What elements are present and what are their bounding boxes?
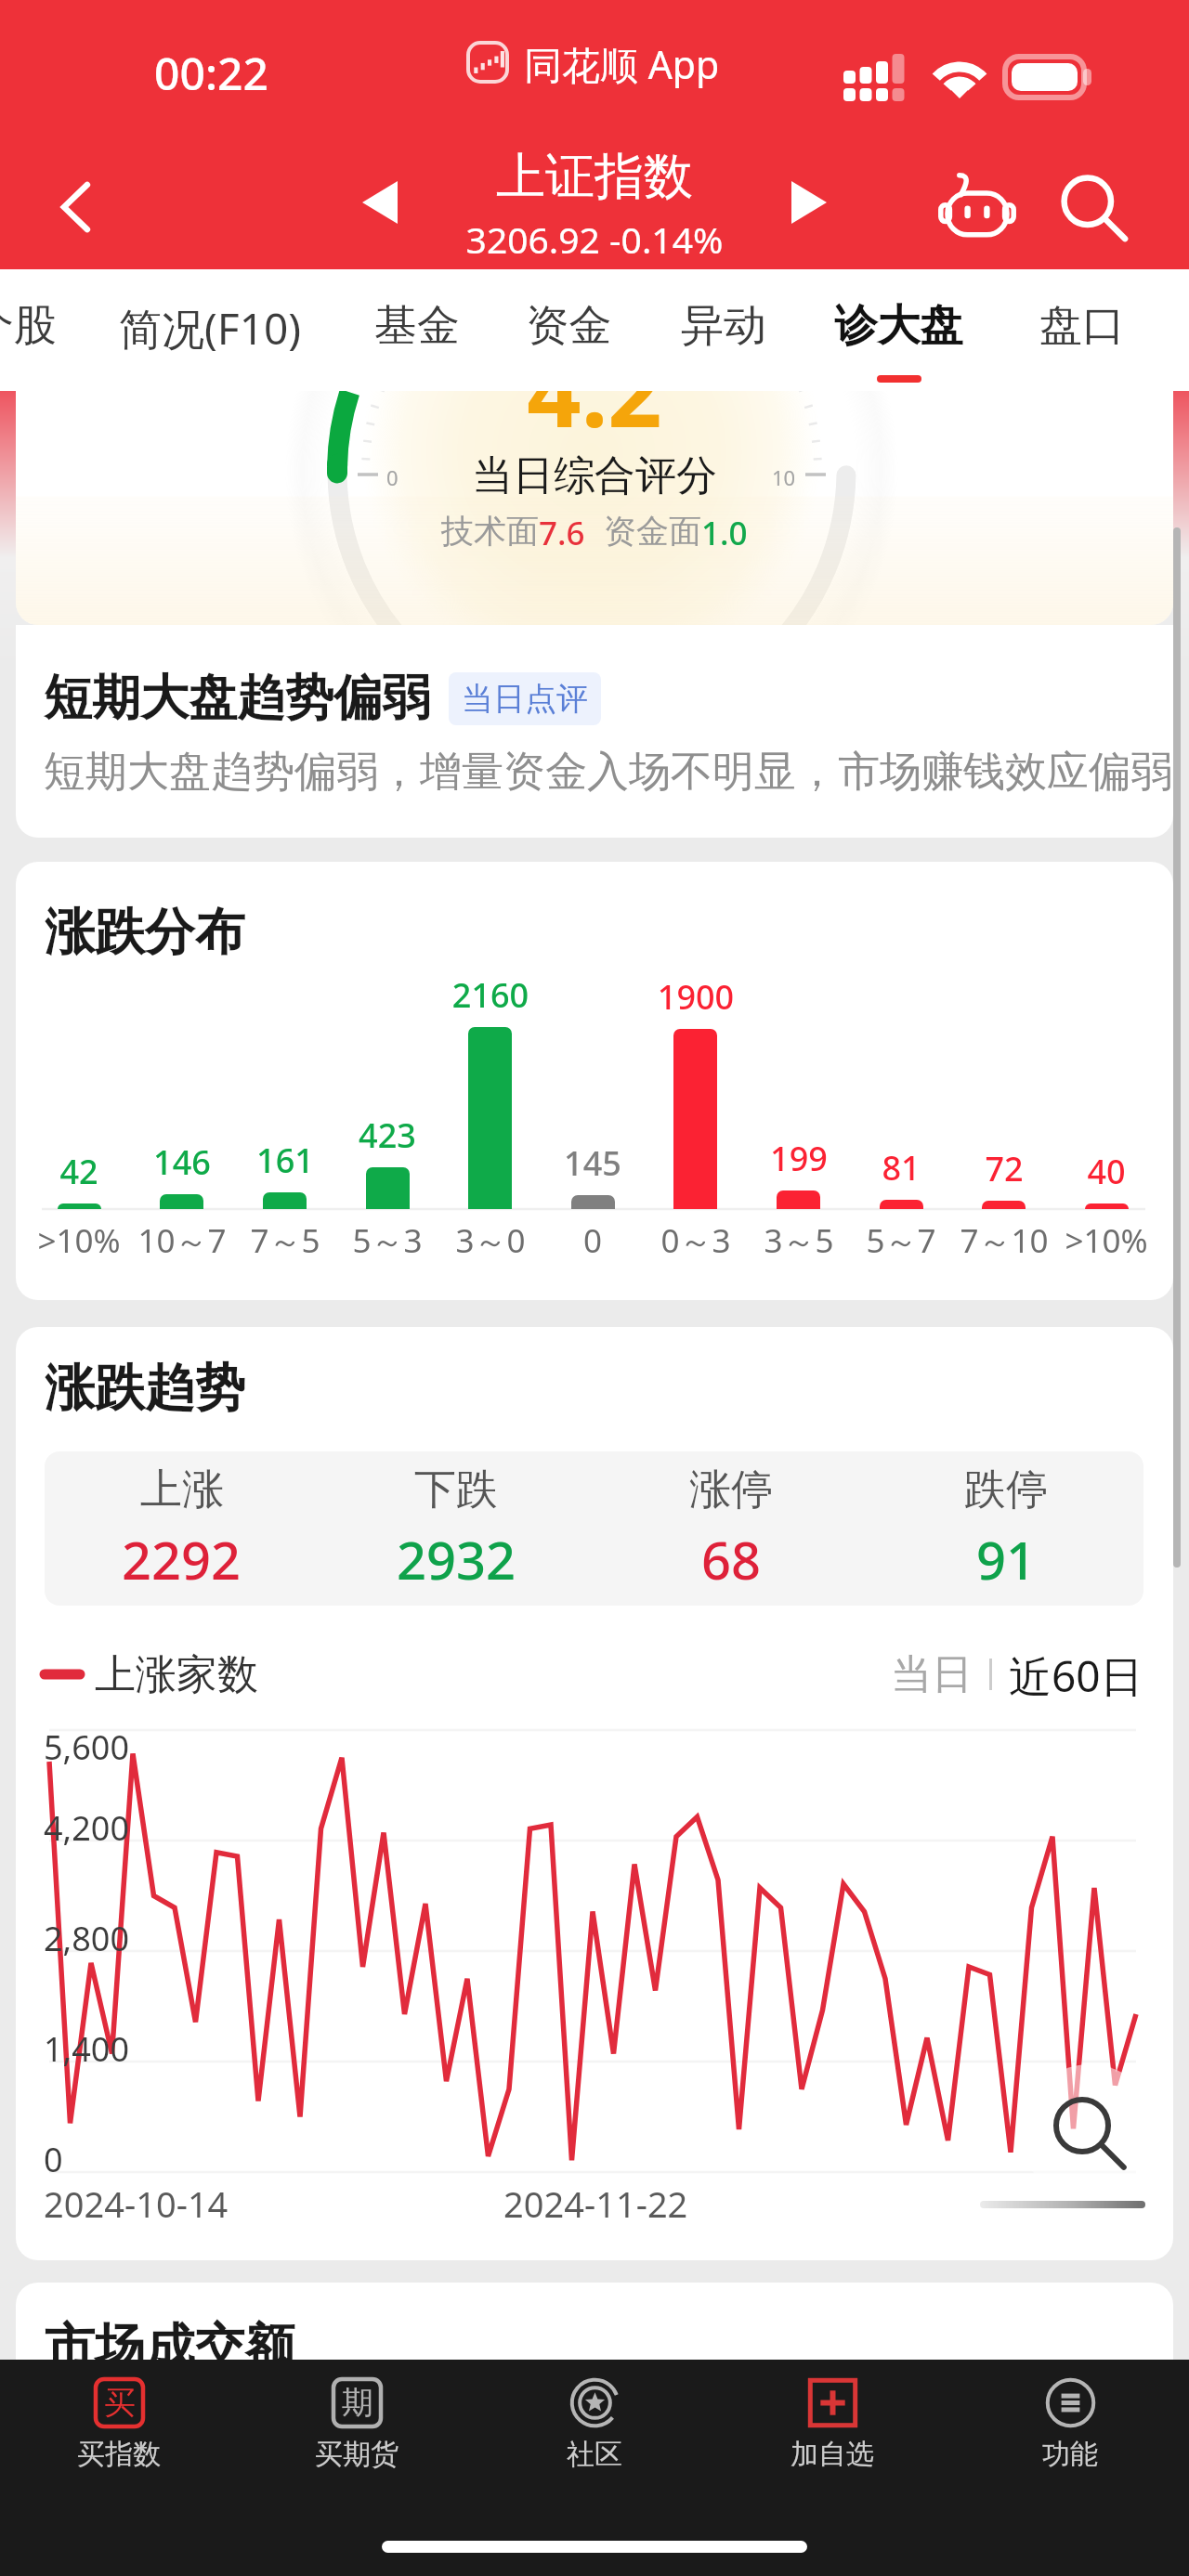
button[interactable]: 社区 [476,2360,713,2508]
staticText: 市场成交额 [45,2316,295,2360]
staticText: 7.6 [539,511,585,555]
staticText: 简况(F10) [82,299,338,358]
button[interactable]: 简况(F10) [82,269,338,391]
button[interactable]: 资金 [492,269,646,391]
staticText: 3～0 [435,1218,546,1263]
staticText: 423 [332,1112,443,1158]
staticText: 2160 [435,972,546,1018]
staticText: >10% [23,1218,135,1263]
button[interactable]: 基金 [342,269,492,391]
staticText: 0 [44,2137,63,2182]
button[interactable]: Zoom chart [1021,2064,1158,2202]
staticText: 42 [23,1149,135,1194]
staticText: 7～5 [229,1218,341,1263]
staticText: 10～7 [126,1218,238,1263]
button[interactable]: 期 [238,2360,476,2508]
staticText: 7～10 [948,1218,1060,1263]
staticText: 跌停 [964,1464,1048,1516]
staticText: 资金 [492,299,646,353]
staticText: 异动 [647,299,800,353]
staticText: 199 [743,1136,855,1181]
staticText: 近60日 [1009,1646,1143,1702]
staticText: 0 [537,1218,648,1263]
staticText: 涨停 [689,1464,773,1516]
button[interactable]: Previous index [347,170,412,235]
staticText: 下跌 [414,1464,498,1516]
button[interactable]: 买 [0,2360,238,2508]
staticText: 基金 [342,299,492,353]
staticText: 当日 [891,1649,973,1700]
button[interactable]: 当日 [891,1649,973,1700]
staticText: 2024-10-14 [44,2179,229,2228]
staticText: 买期货 [315,2437,399,2472]
staticText: 上证指数 [0,146,1189,208]
staticText: 上涨 [140,1464,224,1516]
staticText: 2932 [397,1524,516,1594]
staticText: 2292 [122,1524,242,1594]
button[interactable]: AI assistant [931,162,1024,254]
staticText: 涨跌趋势 [45,1357,245,1420]
staticText: 1,400 [44,2026,130,2072]
staticText: 技术面 [441,511,539,552]
staticText: 1.0 [701,511,748,555]
staticText: 诊大盘 [805,299,992,353]
staticText: 4.2 [16,391,1173,455]
staticText: 10 [772,463,796,491]
staticText: 4,200 [44,1805,130,1851]
staticText: 81 [845,1145,957,1190]
button[interactable]: 功能 [951,2360,1189,2508]
staticText: 社区 [567,2437,622,2472]
staticText: 40 [1051,1149,1162,1194]
staticText: 161 [229,1138,341,1183]
staticText: 5～7 [845,1218,957,1263]
staticText: 72 [948,1146,1060,1191]
staticText: 145 [537,1140,648,1186]
staticText: 5,600 [44,1724,130,1770]
staticText: 当日点评 [462,679,588,719]
button[interactable]: Search [1048,162,1141,254]
staticText: 1900 [640,974,751,1020]
staticText: >10% [1051,1218,1162,1263]
button[interactable]: 短期大盘趋势偏弱 [16,625,1173,838]
staticText: 5～3 [332,1218,443,1263]
staticText: 3206.92 -0.14% [0,215,1189,264]
staticText: 146 [126,1139,238,1185]
button[interactable]: 个股 [0,269,85,391]
staticText: 买指数 [77,2437,161,2472]
staticText: 2024-11-22 [503,2179,688,2228]
staticText: 个股 [0,299,85,353]
staticText: 当日综合评分 [16,450,1173,501]
staticText: 功能 [1042,2437,1098,2472]
staticText: 短期大盘趋势偏弱 [44,668,430,729]
button[interactable]: Back [41,167,113,247]
button[interactable]: Next index [777,170,842,235]
staticText: 2,800 [44,1916,130,1961]
button[interactable]: 加自选 [713,2360,951,2508]
button[interactable]: 盘口 [1007,269,1157,391]
staticText: 0～3 [640,1218,751,1263]
staticText: 期 [342,2383,373,2423]
staticText: 3～5 [743,1218,855,1263]
staticText: 上涨家数 [95,1649,258,1700]
staticText: 买 [104,2383,136,2423]
staticText: 加自选 [790,2437,874,2472]
staticText: 资金面 [604,511,701,552]
staticText: 短期大盘趋势偏弱，增量资金入场不明显，市场赚钱效应偏弱 [44,746,1172,799]
staticText: 盘口 [1007,299,1157,353]
button[interactable]: 诊大盘 [805,269,992,391]
button[interactable]: 近60日 [1009,1646,1143,1702]
staticText: 91 [976,1524,1037,1594]
staticText: 00:22 [154,43,268,103]
staticText: 0 [386,463,399,491]
button[interactable]: 异动 [647,269,800,391]
staticText: 68 [701,1524,762,1594]
staticText: 同花顺 App [524,38,720,90]
staticText: 涨跌分布 [45,901,245,964]
